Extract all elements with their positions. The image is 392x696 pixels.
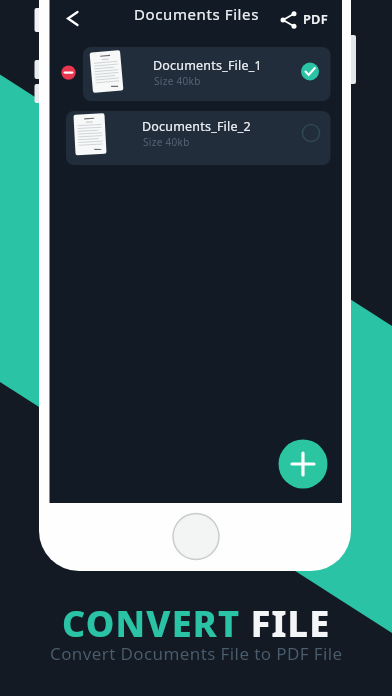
button[interactable] — [58, 62, 79, 83]
button[interactable] — [278, 439, 328, 489]
staticText: Documents Files — [134, 4, 259, 24]
button[interactable] — [66, 111, 330, 165]
staticText: Size 40kb — [143, 135, 190, 149]
staticText: Documents_File_1 — [153, 57, 262, 74]
button[interactable] — [274, 5, 302, 34]
staticText: Convert Documents File to PDF File — [50, 642, 343, 665]
staticText: Size 40kb — [154, 74, 201, 88]
staticText: Documents_File_2 — [142, 118, 251, 135]
button[interactable] — [83, 47, 330, 101]
staticText: CONVERT FILE — [62, 599, 331, 648]
button[interactable] — [58, 3, 90, 35]
button[interactable] — [300, 5, 332, 34]
staticText: PDF — [303, 10, 328, 27]
